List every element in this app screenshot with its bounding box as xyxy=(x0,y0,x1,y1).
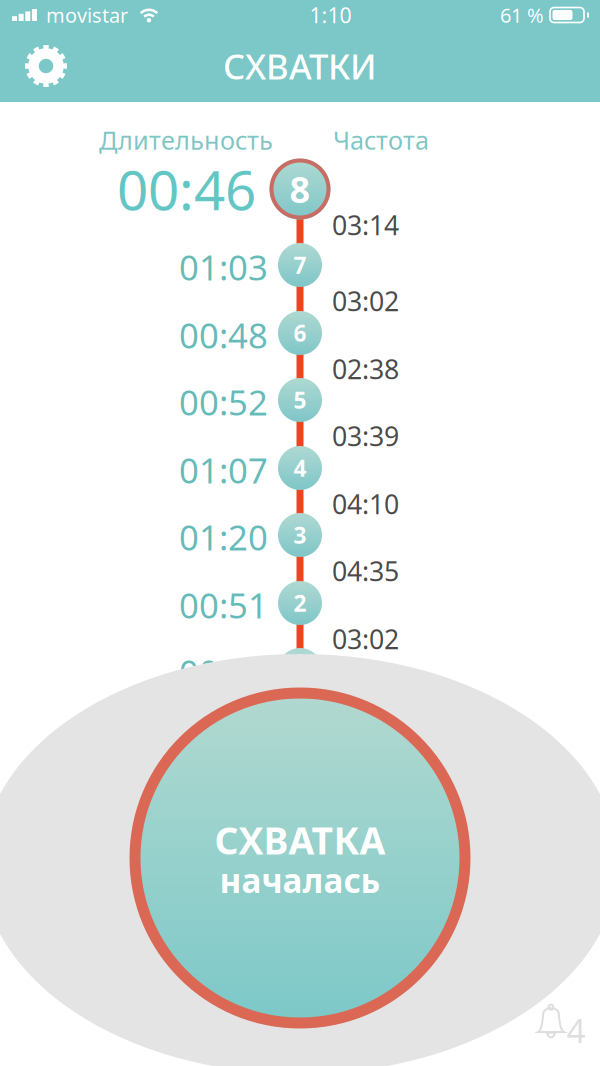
staticText: 00:51 xyxy=(179,582,268,628)
staticText: Частота xyxy=(333,123,429,157)
staticText: 00:48 xyxy=(179,312,268,358)
staticText: 2 xyxy=(293,588,306,618)
staticText: 00:52 xyxy=(179,379,268,425)
staticText: 5 xyxy=(293,385,306,415)
staticText: 03:02 xyxy=(332,283,399,319)
staticText: 04:10 xyxy=(332,486,399,522)
staticText: 00:46 xyxy=(117,153,256,225)
staticText: началась xyxy=(219,858,380,902)
staticText: 02:38 xyxy=(332,351,399,387)
staticText: 3 xyxy=(293,520,306,550)
staticText: 61 % xyxy=(500,2,544,28)
staticText: СХВАТКА xyxy=(214,815,385,865)
staticText: Длительность xyxy=(99,123,273,157)
staticText: 03:39 xyxy=(332,418,399,454)
staticText: 4 xyxy=(566,1008,585,1052)
button[interactable]: СХВАТКА xyxy=(130,688,470,1028)
button[interactable]: Alerts xyxy=(523,998,593,1048)
staticText: 7 xyxy=(293,250,306,280)
staticText: 03:14 xyxy=(332,207,399,243)
staticText: 01:07 xyxy=(179,447,268,493)
staticText: СХВАТКИ xyxy=(223,43,377,89)
staticText: 4 xyxy=(293,453,306,483)
staticText: 03:02 xyxy=(332,621,399,657)
staticText: 8 xyxy=(289,165,310,213)
staticText: 1:10 xyxy=(309,1,351,29)
staticText: 01:03 xyxy=(179,244,268,290)
staticText: 04:35 xyxy=(332,553,399,589)
staticText: movistar xyxy=(46,2,128,28)
button[interactable]: Settings xyxy=(0,34,84,98)
staticText: 01:20 xyxy=(179,514,268,560)
staticText: 6 xyxy=(293,318,306,348)
staticText: 00:46 xyxy=(179,649,268,695)
